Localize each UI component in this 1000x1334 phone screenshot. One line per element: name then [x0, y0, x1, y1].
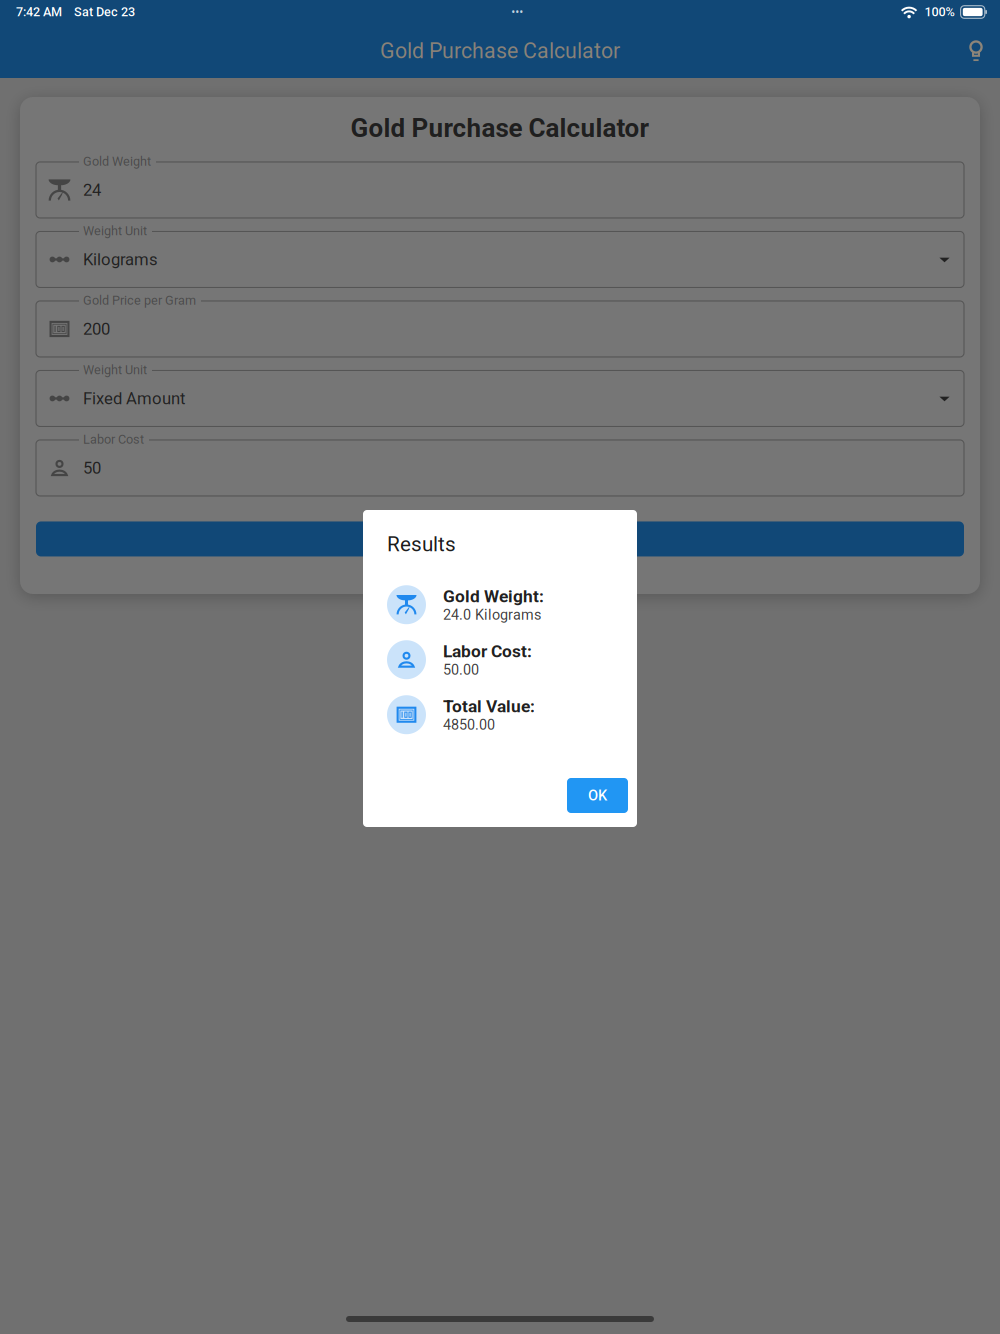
staticText: Labor Cost: [443, 641, 532, 661]
staticText: 24.0 Kilograms [443, 606, 541, 623]
staticText: Labor Cost [83, 432, 144, 447]
staticText: Kilograms [83, 250, 158, 269]
staticText: Weight Unit [83, 223, 147, 238]
staticText: 50.00 [443, 661, 479, 678]
staticText: 4850.00 [443, 716, 495, 733]
button[interactable]: OK [567, 778, 628, 813]
staticText: Gold Price per Gram [83, 293, 196, 308]
staticText: 7:42 AM [16, 5, 62, 19]
staticText: Sat Dec 23 [74, 5, 135, 19]
staticText: Weight Unit [83, 362, 147, 377]
staticText: 50 [83, 458, 101, 478]
staticText: OK [588, 787, 607, 804]
staticText: ••• [511, 5, 523, 19]
staticText: 24 [83, 180, 101, 200]
staticText: 200 [83, 319, 110, 339]
button[interactable]: Tips [954, 29, 998, 73]
staticText: Gold Purchase Calculator [350, 113, 649, 143]
staticText: Gold Weight: [443, 586, 544, 606]
staticText: 100% [925, 5, 955, 19]
staticText: Total Value: [443, 696, 535, 716]
staticText: Fixed Amount [83, 389, 185, 408]
button[interactable] [36, 521, 964, 556]
staticText: Gold Weight [83, 154, 151, 169]
staticText: Gold Purchase Calculator [380, 38, 620, 63]
staticText: Results [387, 532, 456, 556]
